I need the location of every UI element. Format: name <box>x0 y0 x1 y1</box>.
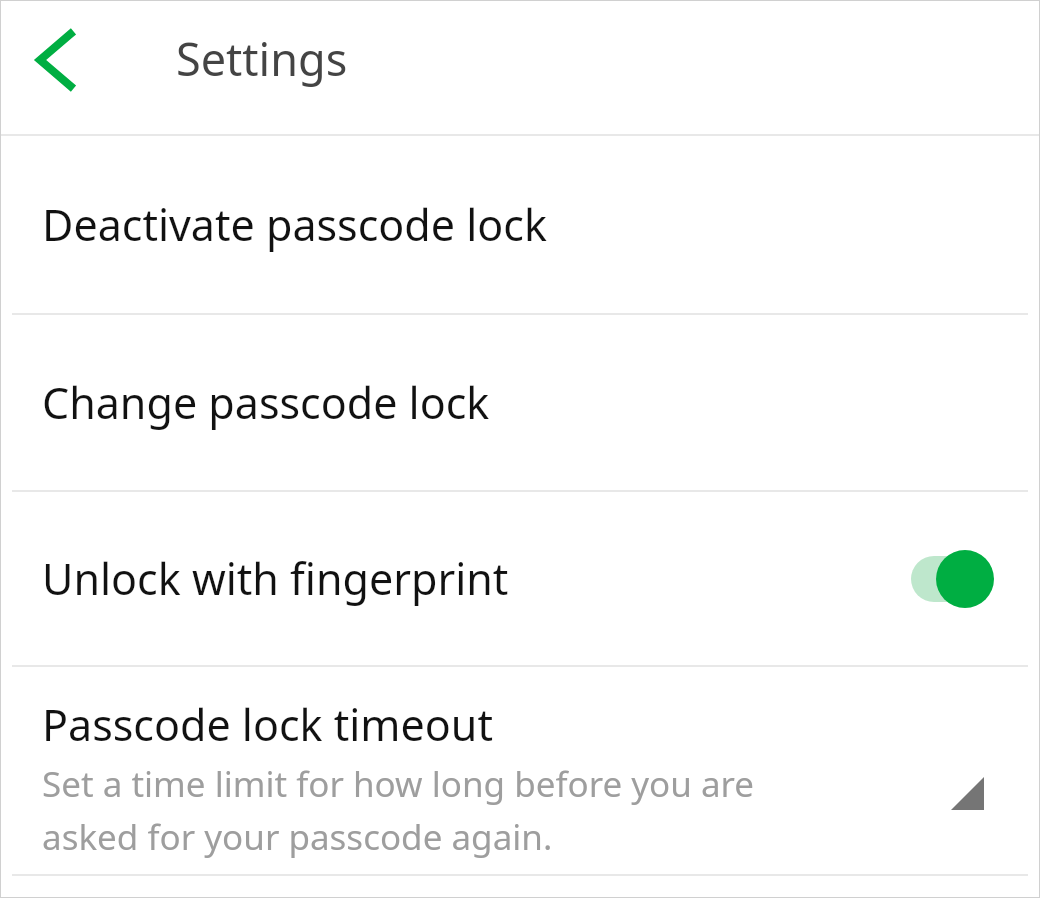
staticText: Set a time limit for how long before you… <box>42 760 755 860</box>
button[interactable]: Back <box>10 22 102 98</box>
staticText: Unlock with fingerprint <box>42 549 509 608</box>
other: Expand <box>951 777 984 810</box>
staticText: Settings <box>176 28 348 89</box>
staticText: Change passcode lock <box>42 373 490 432</box>
staticText: Passcode lock timeout <box>42 695 493 754</box>
button[interactable]: Deactivate passcode lock <box>0 136 1040 313</box>
staticText: Deactivate passcode lock <box>42 195 547 254</box>
button[interactable]: Unlock with fingerprint <box>0 492 1040 665</box>
button[interactable]: Change passcode lock <box>0 315 1040 490</box>
button[interactable]: Passcode lock timeout <box>0 667 1040 874</box>
